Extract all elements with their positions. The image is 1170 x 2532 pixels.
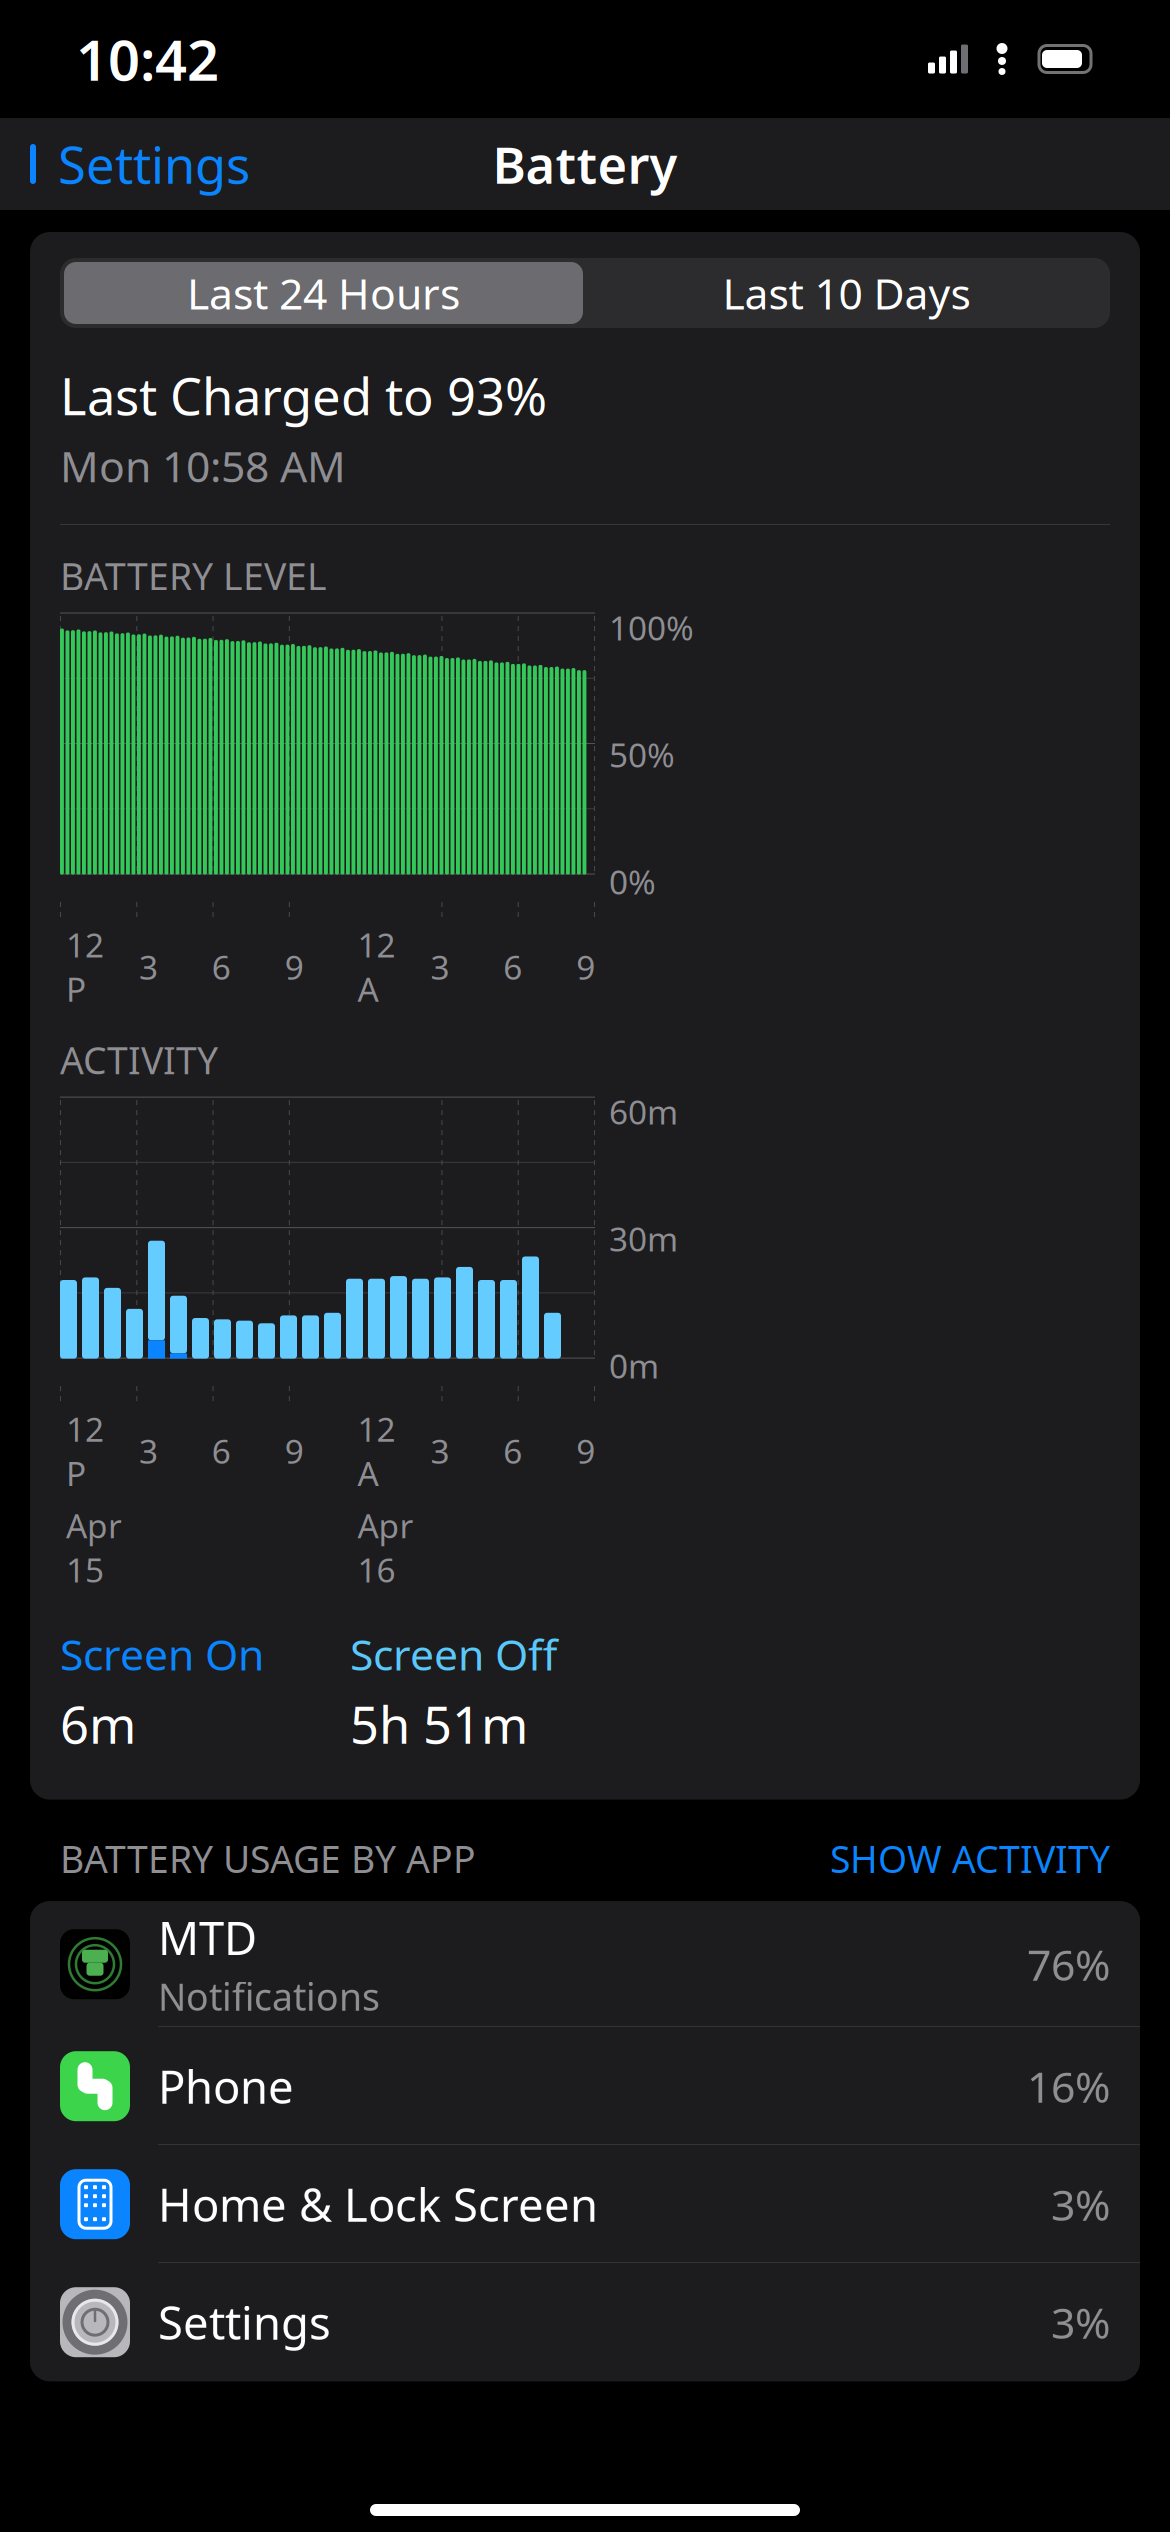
staticText: Last 24 Hours bbox=[187, 265, 460, 321]
staticText: Screen On bbox=[60, 1626, 264, 1682]
staticText: 3 bbox=[139, 1429, 158, 1473]
button[interactable]: SHOW ACTIVITY bbox=[830, 1834, 1110, 1883]
staticText: 100% bbox=[609, 605, 694, 650]
staticText: 6m bbox=[60, 1690, 136, 1758]
staticText: 12 A bbox=[357, 1407, 395, 1495]
staticText: 12 A bbox=[357, 922, 395, 1011]
button[interactable]: Settings bbox=[30, 2263, 1140, 2381]
staticText: Screen Off bbox=[350, 1626, 557, 1682]
staticText: 12 P bbox=[66, 922, 104, 1011]
staticText: Notifications bbox=[158, 1971, 380, 2021]
staticText: SHOW ACTIVITY bbox=[830, 1834, 1110, 1883]
staticText: 5h 51m bbox=[350, 1690, 528, 1758]
staticText: 3 bbox=[430, 945, 449, 989]
staticText: 0m bbox=[609, 1343, 659, 1388]
button[interactable]: Phone bbox=[30, 2027, 1140, 2145]
staticText: 6 bbox=[503, 1429, 522, 1473]
button[interactable]: Home & Lock Screen bbox=[30, 2145, 1140, 2263]
staticText: MTD bbox=[158, 1907, 257, 1967]
staticText: 9 bbox=[285, 1429, 304, 1473]
staticText: 3 bbox=[430, 1429, 449, 1473]
staticText: 6 bbox=[212, 1429, 231, 1473]
button[interactable]: Settings bbox=[24, 120, 250, 208]
staticText: Phone bbox=[158, 2056, 294, 2116]
staticText: 9 bbox=[576, 945, 595, 989]
staticText: 3 bbox=[139, 945, 158, 989]
staticText: Settings bbox=[158, 2292, 331, 2352]
button[interactable]: Screen On bbox=[60, 1626, 350, 1758]
staticText: BATTERY LEVEL bbox=[60, 551, 327, 600]
button[interactable]: Screen Off bbox=[350, 1626, 1110, 1758]
staticText: Settings bbox=[58, 130, 250, 198]
staticText: 16% bbox=[1027, 2058, 1110, 2115]
staticText: Home & Lock Screen bbox=[158, 2174, 598, 2234]
staticText: Apr 16 bbox=[357, 1503, 413, 1592]
staticText: 76% bbox=[1027, 1936, 1110, 1993]
staticText: 30m bbox=[609, 1216, 678, 1261]
staticText: 10:42 bbox=[76, 22, 219, 96]
staticText: Battery bbox=[492, 130, 677, 198]
staticText: 9 bbox=[285, 945, 304, 989]
staticText: 12 P bbox=[66, 1407, 104, 1495]
staticText: 3% bbox=[1051, 2176, 1110, 2233]
staticText: Last Charged to 93% bbox=[60, 362, 547, 429]
button[interactable]: Last 24 Hours bbox=[60, 258, 1110, 328]
staticText: Last 10 Days bbox=[722, 265, 970, 321]
staticText: 0% bbox=[609, 859, 656, 904]
staticText: 9 bbox=[576, 1429, 595, 1473]
staticText: BATTERY USAGE BY APP bbox=[60, 1834, 476, 1883]
staticText: Apr 15 bbox=[66, 1503, 122, 1592]
staticText: 60m bbox=[609, 1089, 678, 1134]
staticText: 6 bbox=[503, 945, 522, 989]
staticText: 50% bbox=[609, 732, 675, 777]
staticText: 3% bbox=[1051, 2294, 1110, 2351]
staticText: 6 bbox=[212, 945, 231, 989]
button[interactable]: MTD bbox=[30, 1901, 1140, 2027]
staticText: Mon 10:58 AM bbox=[60, 437, 346, 494]
staticText: ACTIVITY bbox=[60, 1035, 218, 1085]
